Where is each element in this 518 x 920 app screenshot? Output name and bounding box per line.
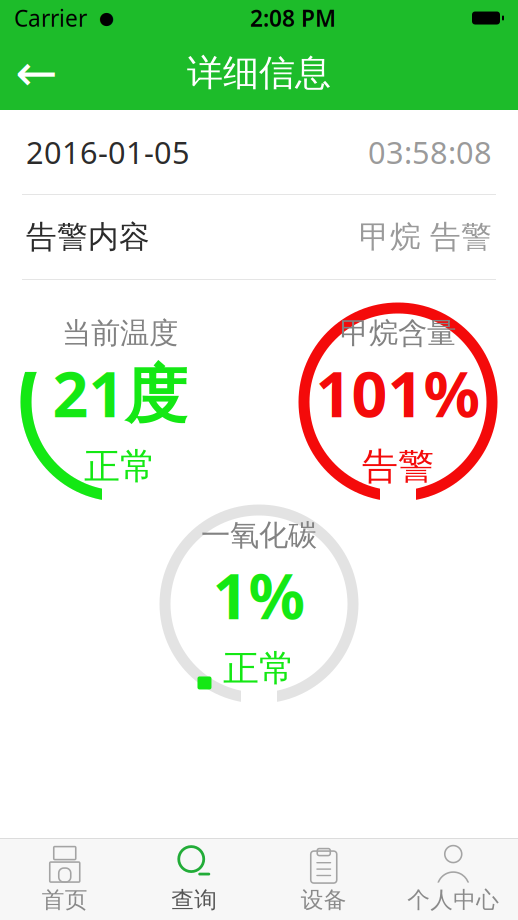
staticText: 21度 [52,351,187,434]
button[interactable]: 查询 [129,839,259,920]
staticText: 03:58:08 [368,132,492,172]
button[interactable]: 设备 [259,839,388,920]
staticText: 首页 [42,886,88,914]
staticText: 告警内容 [26,218,150,256]
staticText: 2016-01-05 [26,132,190,172]
staticText: 详细信息 [187,51,331,95]
staticText: 正常 [223,646,295,691]
staticText: Carrier [14,3,87,33]
staticText: 个人中心 [407,886,499,914]
button[interactable]: 首页 [0,839,129,920]
staticText: 查询 [171,886,217,914]
staticText: 一氧化碳 [201,517,317,553]
button[interactable]: 个人中心 [388,839,518,920]
staticText: 2:08 PM [250,3,336,33]
staticText: 告警 [362,444,434,489]
staticText: 101% [315,351,480,434]
staticText: 当前温度 [62,315,178,351]
button[interactable]: Back [0,38,72,108]
staticText: ● [87,8,114,28]
staticText: 1% [212,553,305,636]
staticText: 甲烷 告警 [359,218,492,256]
staticText: 甲烷含量 [340,315,456,351]
staticText: 设备 [301,886,347,914]
staticText: 正常 [84,444,156,489]
staticText: ← [15,44,57,102]
